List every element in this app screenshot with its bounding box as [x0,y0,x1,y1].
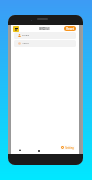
staticText: Profile [22,34,29,37]
staticText: BRIDGE [39,27,50,31]
button[interactable]: Home [37,149,41,153]
button[interactable]: About [14,40,76,47]
button[interactable]: App icon [13,26,19,32]
button[interactable]: Reset [64,26,76,31]
button[interactable]: Setting [60,145,75,150]
button[interactable]: Back [18,148,22,152]
button[interactable]: Profile [14,32,76,39]
staticText: About [22,42,29,45]
staticText: Reset [66,27,74,31]
staticText: Setting [65,146,74,149]
